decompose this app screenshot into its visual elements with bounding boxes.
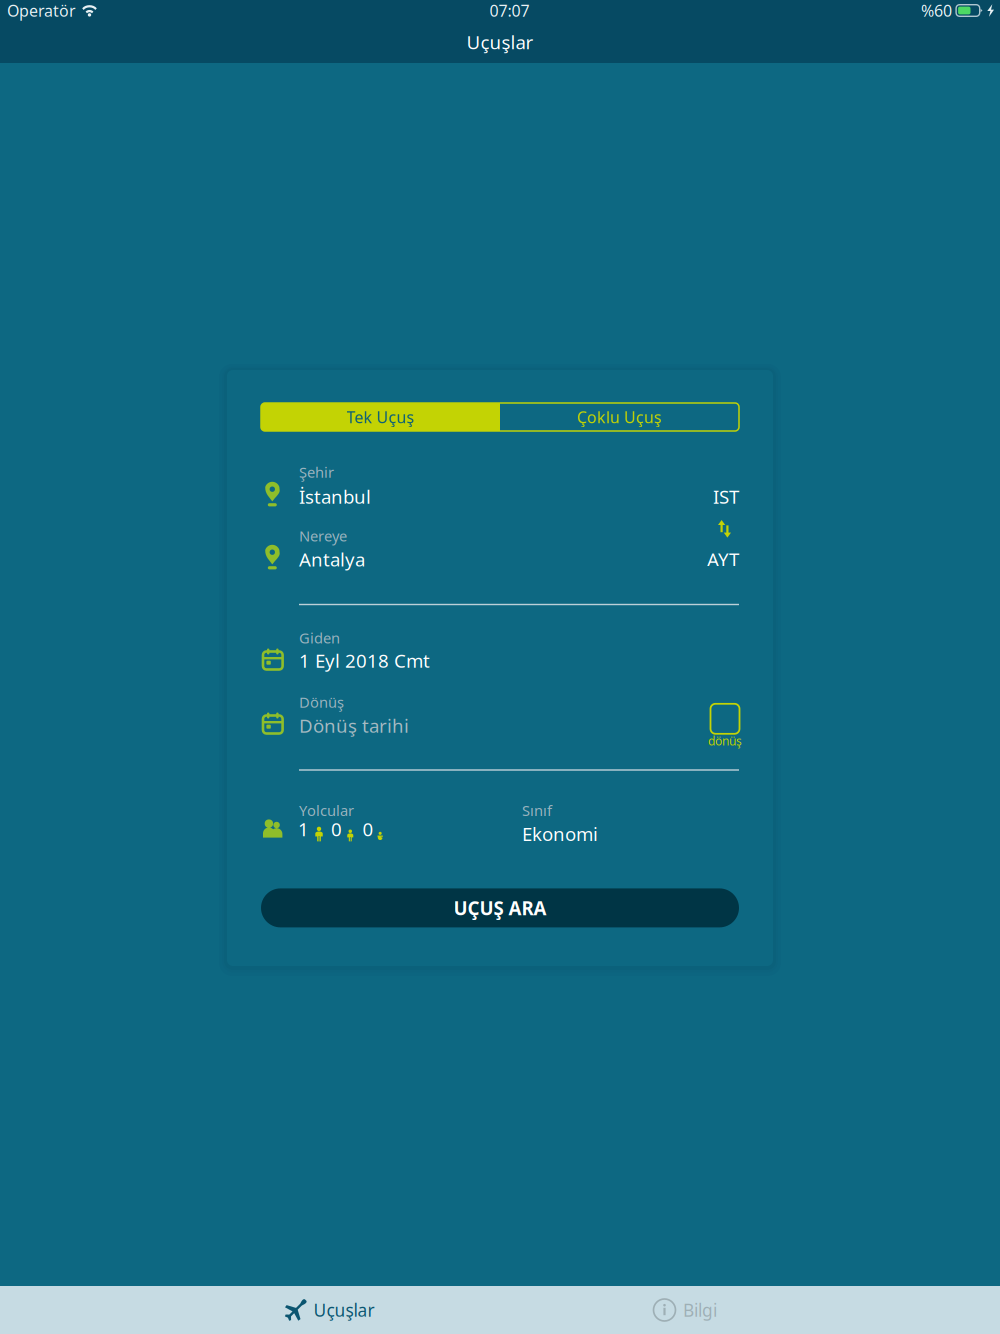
staticText: Uçuşlar [466, 30, 533, 54]
staticText: Ekonomi [522, 821, 598, 846]
staticText: Giden [299, 628, 340, 647]
staticText: UÇUŞ ARA [453, 895, 546, 920]
button[interactable]: Kalkış ve varış yerlerini değiştir [712, 514, 737, 544]
button[interactable]: Dönüş [261, 692, 661, 738]
button[interactable]: Giden [261, 628, 661, 674]
staticText: Uçuşlar [313, 1298, 374, 1321]
button[interactable]: Sınıf [522, 800, 722, 846]
button[interactable]: Uçuşlar [270, 1286, 390, 1334]
staticText: IST [713, 484, 739, 509]
staticText: Çoklu Uçuş [577, 406, 662, 428]
staticText: AYT [707, 547, 739, 572]
staticText: %60 [921, 0, 952, 21]
button[interactable]: Çoklu Uçuş [500, 403, 739, 431]
staticText: Nereye [299, 526, 347, 545]
staticText: Operatör [7, 0, 76, 21]
staticText: Sınıf [522, 800, 552, 820]
staticText: 1 Eyl 2018 Cmt [299, 648, 430, 673]
staticText: 0 [362, 816, 373, 841]
button[interactable]: Şehir [261, 462, 739, 508]
button[interactable]: dönüş [703, 704, 747, 748]
staticText: Dönüş [299, 692, 344, 712]
button[interactable]: UÇUŞ ARA [261, 888, 739, 927]
button[interactable]: Tek Uçuş [261, 403, 500, 431]
staticText: Dönüş tarihi [299, 713, 409, 738]
staticText: Yolcular [299, 800, 354, 820]
staticText: Şehir [299, 462, 334, 482]
staticText: 0 [331, 816, 342, 841]
staticText: Bilgi [683, 1298, 717, 1321]
button[interactable]: Bilgi [630, 1286, 740, 1334]
staticText: 07:07 [490, 0, 530, 21]
button[interactable]: Nereye [261, 525, 739, 571]
staticText: dönüş [708, 733, 742, 749]
button[interactable]: Yolcular [261, 800, 485, 846]
staticText: Tek Uçuş [346, 406, 414, 428]
staticText: 1 [298, 816, 309, 841]
staticText: Antalya [299, 547, 365, 572]
staticText: İstanbul [299, 484, 371, 509]
